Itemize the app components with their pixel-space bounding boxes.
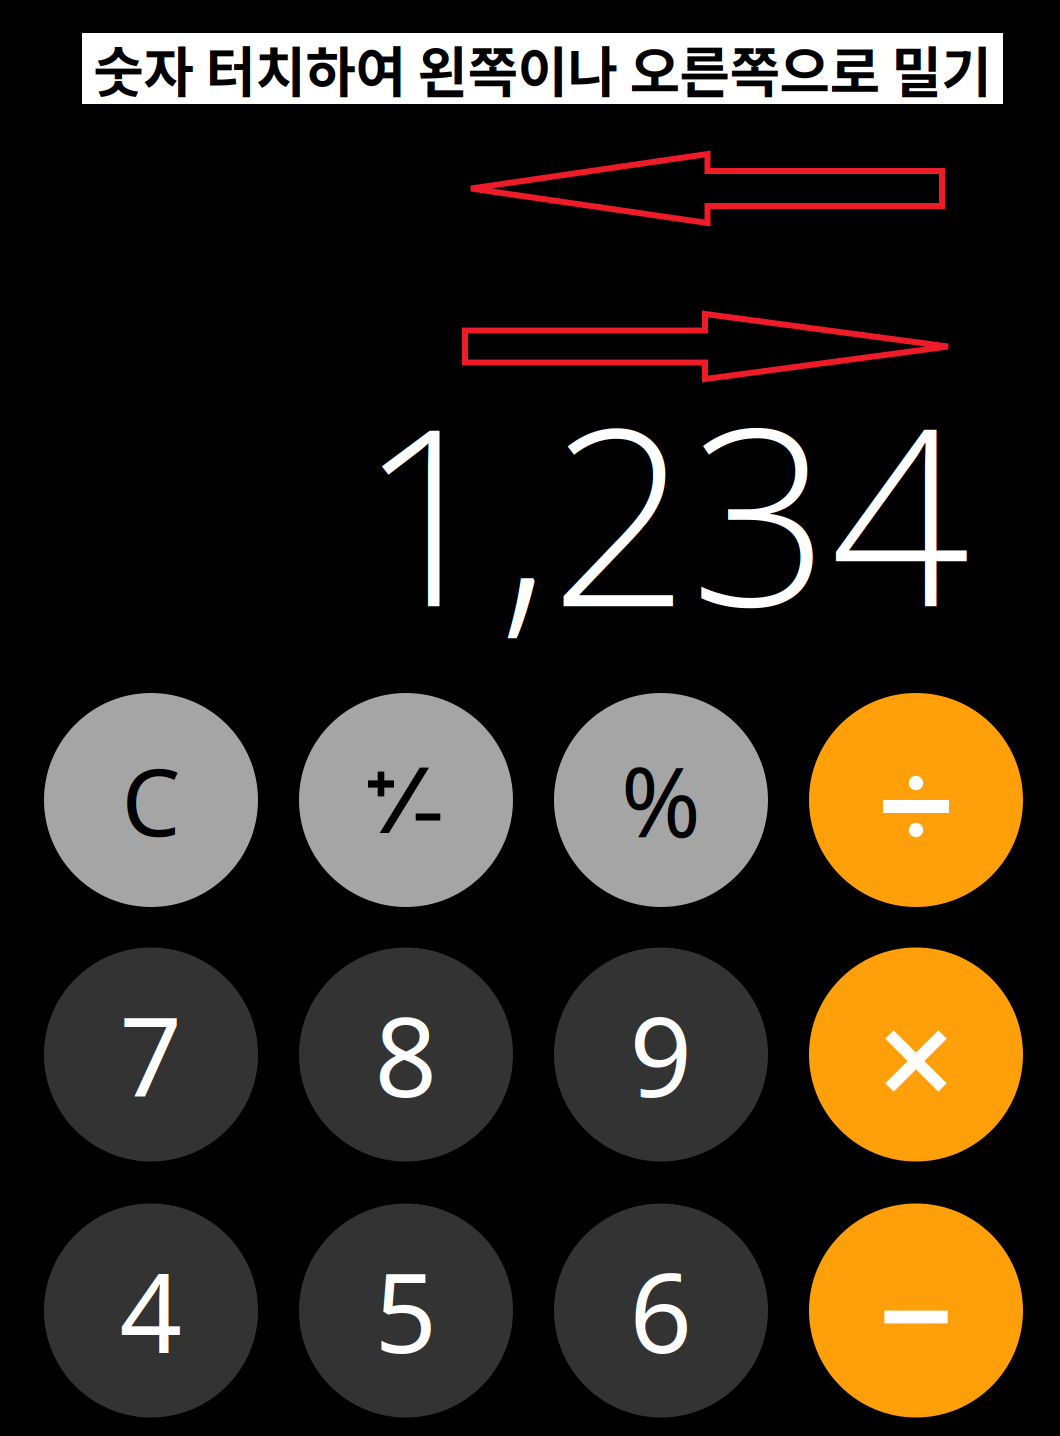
staticText: % [621,736,701,864]
button[interactable]: C [44,693,258,907]
staticText: 6 [629,1238,692,1383]
staticText: 1,234 [358,344,970,678]
button[interactable]: Multiply [809,947,1023,1161]
staticText: 숫자 터치하여 왼쪽이나 오른쪽으로 밀기 [93,29,991,108]
button[interactable]: Divide [809,693,1023,907]
staticText: 5 [374,1238,437,1383]
button[interactable]: 6 [554,1203,768,1417]
staticText: C [121,738,180,862]
button[interactable]: 7 [44,947,258,1161]
button[interactable]: 5 [299,1203,513,1417]
button[interactable]: Subtract [809,1203,1023,1417]
staticText: 9 [629,982,692,1127]
button[interactable]: % [554,693,768,907]
button[interactable]: 8 [299,947,513,1161]
button[interactable]: Plus minus [299,693,513,907]
staticText: 4 [119,1238,182,1383]
staticText: 7 [119,982,182,1127]
staticText: 8 [374,982,437,1127]
button[interactable]: 4 [44,1203,258,1417]
button[interactable]: 9 [554,947,768,1161]
